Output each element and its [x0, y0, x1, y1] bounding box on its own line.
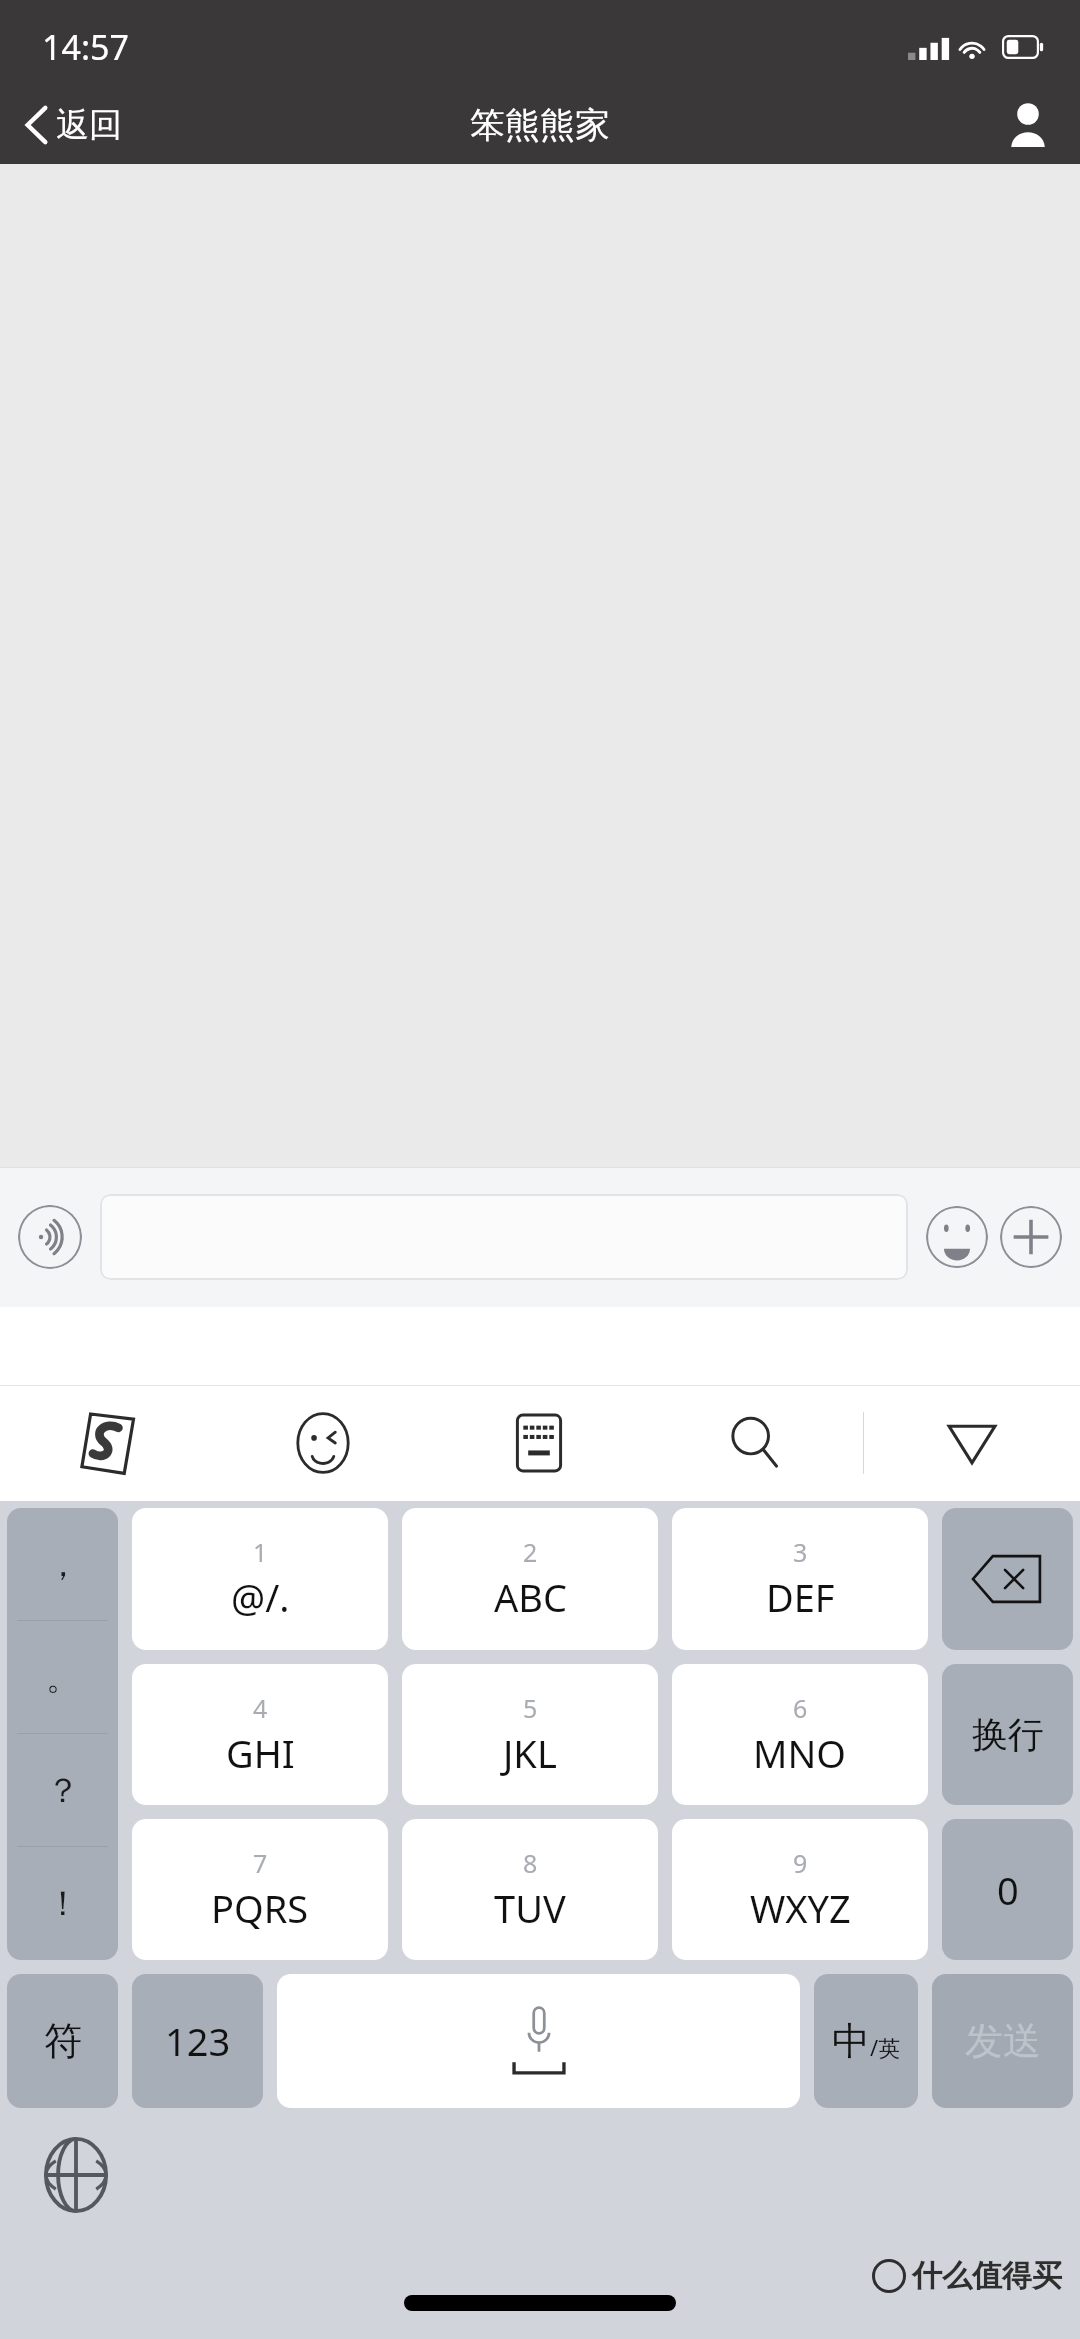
button[interactable]: 9: [672, 1819, 928, 1960]
button[interactable]: [100, 1194, 908, 1280]
button[interactable]: 1: [132, 1508, 388, 1650]
staticText: 123: [165, 2015, 231, 2067]
button[interactable]: 3: [672, 1508, 928, 1650]
button[interactable]: 4: [132, 1664, 388, 1805]
staticText: 8: [523, 1846, 538, 1880]
button[interactable]: 中: [814, 1974, 918, 2108]
staticText: ！: [46, 1882, 80, 1925]
staticText: @/.: [231, 1571, 290, 1623]
button[interactable]: 2: [402, 1508, 658, 1650]
button[interactable]: Voice message: [18, 1205, 82, 1269]
button[interactable]: ！: [7, 1847, 118, 1960]
button[interactable]: 符: [7, 1974, 118, 2108]
staticText: 中: [832, 2017, 870, 2065]
button[interactable]: Search: [647, 1385, 863, 1501]
staticText: WXYZ: [750, 1882, 851, 1934]
staticText: DEF: [766, 1571, 835, 1623]
button[interactable]: Backspace: [942, 1508, 1073, 1650]
staticText: 1: [253, 1535, 268, 1569]
staticText: 2: [523, 1535, 538, 1569]
button[interactable]: 返回: [0, 96, 140, 154]
button[interactable]: ，: [7, 1508, 118, 1621]
button[interactable]: Contact profile: [988, 93, 1080, 157]
staticText: 笨熊熊家: [470, 103, 610, 147]
staticText: TUV: [494, 1882, 566, 1934]
button[interactable]: 0: [942, 1819, 1073, 1960]
staticText: 换行: [972, 1712, 1044, 1757]
staticText: GHI: [226, 1727, 295, 1779]
staticText: 符: [44, 2017, 82, 2065]
staticText: 0: [997, 1864, 1019, 1916]
button[interactable]: ？: [7, 1734, 118, 1847]
staticText: 3: [793, 1535, 808, 1569]
staticText: PQRS: [211, 1882, 309, 1934]
staticText: 发送: [965, 2017, 1041, 2065]
button[interactable]: 123: [132, 1974, 263, 2108]
staticText: MNO: [753, 1727, 847, 1779]
staticText: 什么值得买: [912, 2257, 1062, 2295]
staticText: 9: [793, 1846, 808, 1880]
button[interactable]: 8: [402, 1819, 658, 1960]
staticText: ABC: [494, 1571, 567, 1623]
staticText: /英: [870, 2032, 901, 2062]
staticText: 6: [793, 1691, 808, 1725]
button[interactable]: Emoticons: [215, 1385, 431, 1501]
staticText: 4: [253, 1691, 268, 1725]
staticText: 7: [253, 1846, 268, 1880]
staticText: JKL: [503, 1727, 557, 1779]
button[interactable]: 6: [672, 1664, 928, 1805]
staticText: 5: [523, 1691, 538, 1725]
staticText: ？: [46, 1769, 80, 1812]
button[interactable]: More options: [1000, 1206, 1062, 1268]
button[interactable]: Keyboard layout: [431, 1385, 647, 1501]
button[interactable]: 。: [7, 1621, 118, 1734]
button[interactable]: 5: [402, 1664, 658, 1805]
staticText: ，: [46, 1543, 80, 1586]
button[interactable]: 7: [132, 1819, 388, 1960]
button[interactable]: 发送: [932, 1974, 1073, 2108]
staticText: 。: [46, 1656, 80, 1699]
button[interactable]: Space, voice input: [277, 1974, 800, 2108]
button[interactable]: Hide keyboard: [864, 1385, 1080, 1501]
staticText: 14:57: [42, 24, 129, 70]
staticText: 返回: [56, 104, 122, 146]
button[interactable]: 换行: [942, 1664, 1073, 1805]
button[interactable]: Sogou input settings: [0, 1385, 215, 1501]
button[interactable]: Emoji: [926, 1206, 988, 1268]
button[interactable]: Switch input language: [34, 2133, 118, 2217]
